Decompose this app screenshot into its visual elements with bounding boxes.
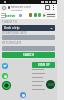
button[interactable]: Reload <box>1 5 7 11</box>
button[interactable]: Tabs <box>45 5 50 10</box>
staticText: SIGN UP <box>38 63 50 67</box>
staticText: betw <box>5 13 16 18</box>
button[interactable]: Share on WhatsApp <box>2 73 8 79</box>
staticText: RETURN DATE <box>2 41 22 45</box>
button[interactable]: SIGN UP <box>32 62 55 68</box>
button[interactable]: SEARCH <box>2 52 55 58</box>
staticText: SEARCH <box>23 53 35 57</box>
button[interactable]: More options <box>51 4 56 11</box>
button[interactable] <box>43 12 55 18</box>
button[interactable]: Menu <box>1 13 6 18</box>
staticText: DEPARTURE DATE <box>2 31 27 35</box>
staticText: Book a trip <box>4 26 20 30</box>
button[interactable]: Share <box>19 14 22 17</box>
staticText: I WANT TO <box>2 20 18 24</box>
button[interactable]: Share on Twitter <box>2 63 8 69</box>
button[interactable]: Book a trip <box>2 25 55 31</box>
staticText: between.com/register <box>11 5 41 11</box>
